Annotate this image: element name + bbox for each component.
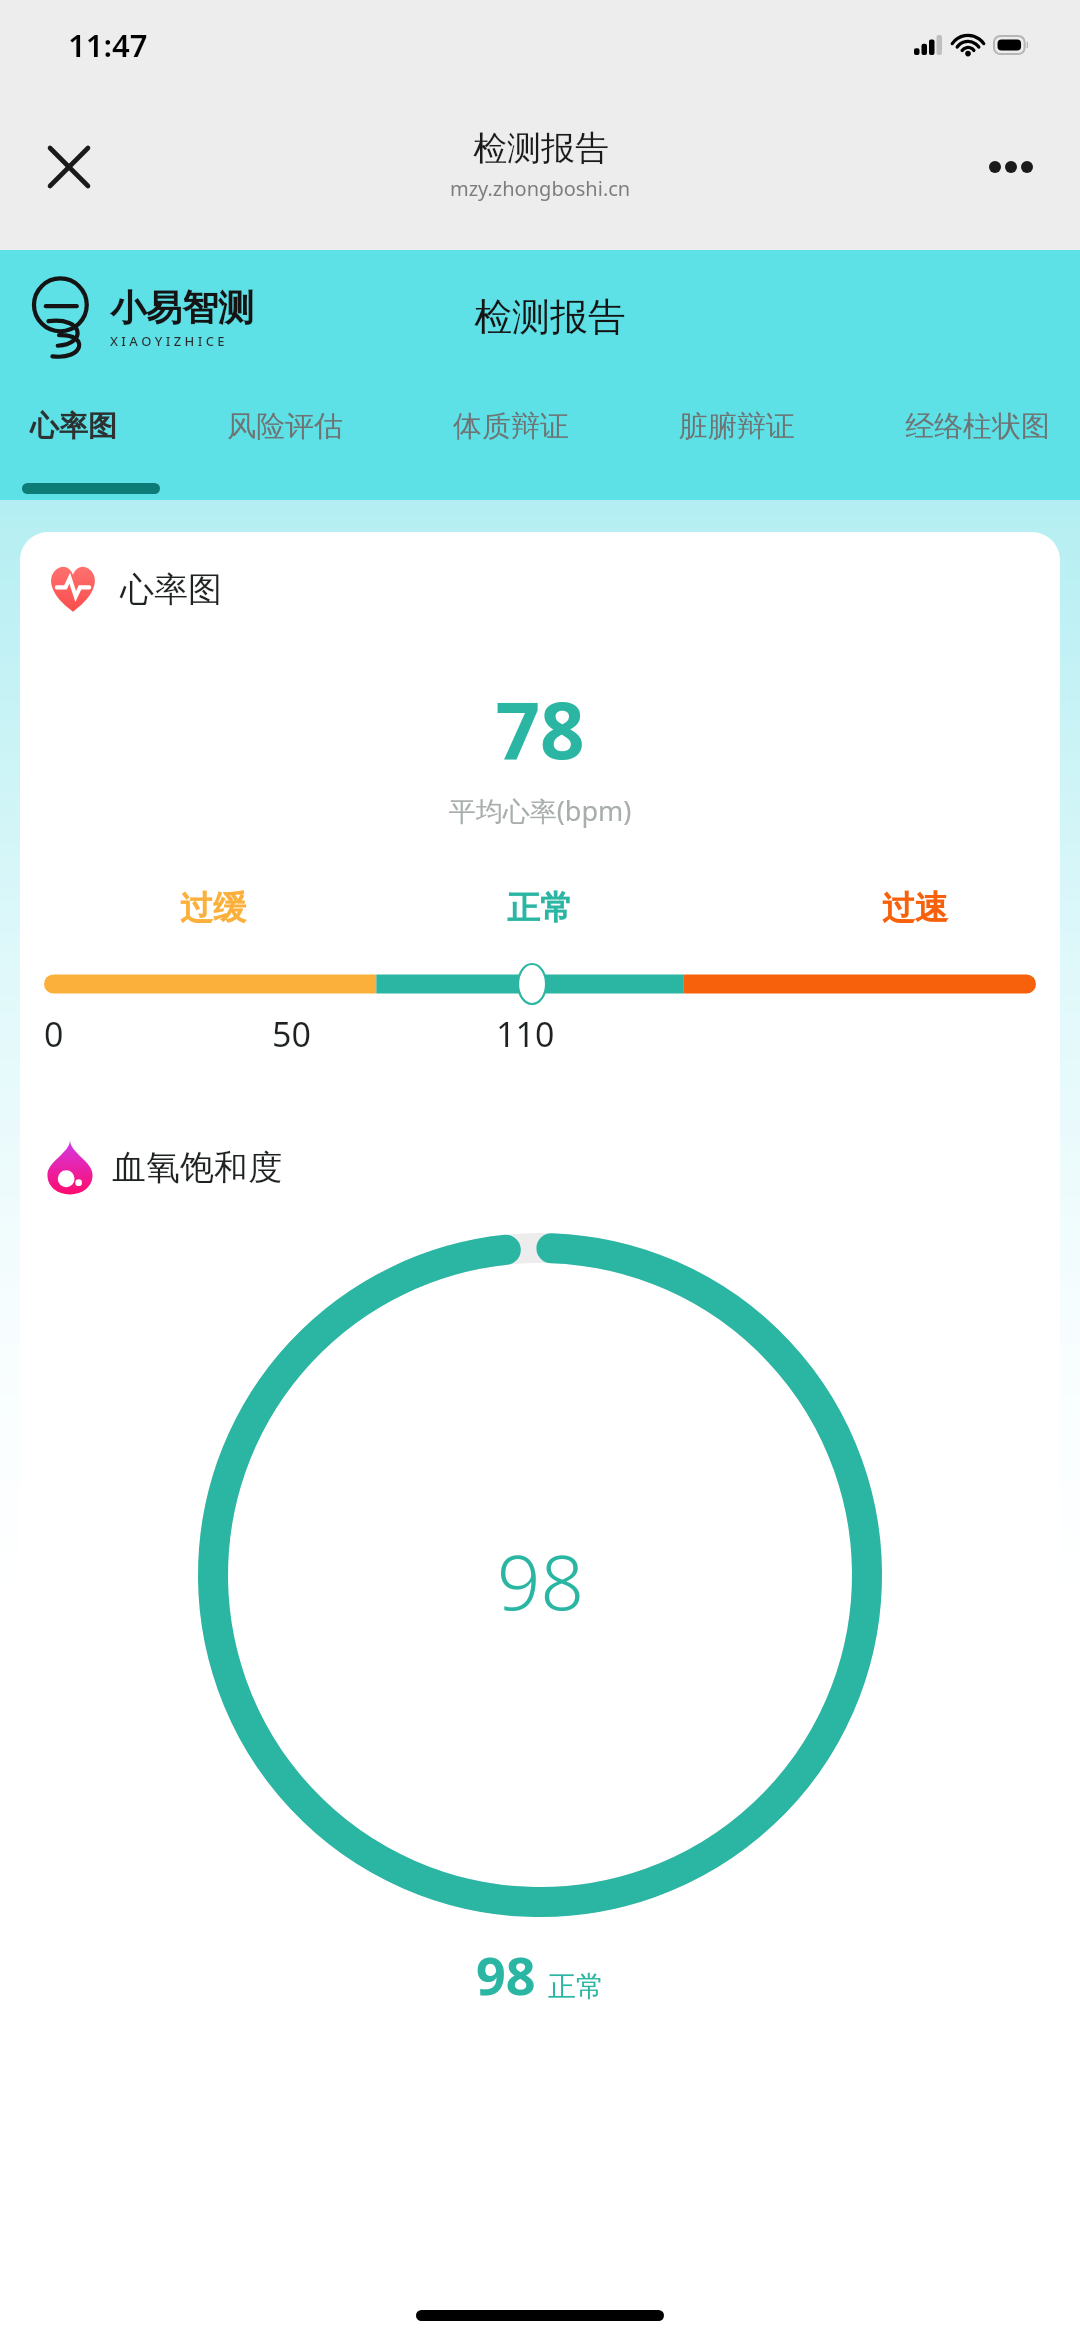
staticText: 正常 <box>507 887 573 929</box>
staticText: 98 <box>476 1939 536 2010</box>
staticText: 11:47 <box>68 24 148 66</box>
staticText: 体质辩证 <box>453 408 569 445</box>
staticText: 110 <box>496 1011 555 1057</box>
button[interactable]: Close <box>32 130 106 204</box>
staticText: 风险评估 <box>227 408 343 445</box>
staticText: 正常 <box>548 1969 604 2004</box>
staticText: 血氧饱和度 <box>112 1146 282 1189</box>
staticText: 98 <box>497 1529 584 1633</box>
staticText: 脏腑辩证 <box>679 408 795 445</box>
staticText: 小易智测 <box>110 285 254 330</box>
button[interactable]: More options <box>972 128 1050 206</box>
staticText: 0 <box>44 1011 64 1057</box>
button[interactable]: 脏腑辩证 <box>663 402 811 451</box>
staticText: 平均心率(bpm) <box>20 792 1060 829</box>
staticText: 检测报告 <box>474 293 626 341</box>
button[interactable]: 心率图 <box>14 402 133 451</box>
staticText: 过速 <box>882 887 948 929</box>
staticText: 心率图 <box>30 408 117 445</box>
staticText: X I A O Y I Z H I C E <box>110 332 225 350</box>
staticText: 检测报告 <box>473 127 609 170</box>
button[interactable]: 体质辩证 <box>437 402 585 451</box>
staticText: 心率图 <box>120 568 222 611</box>
button[interactable]: 风险评估 <box>211 402 359 451</box>
button[interactable]: 经络柱状图 <box>889 402 1066 451</box>
staticText: 过缓 <box>180 887 246 929</box>
staticText: 78 <box>20 676 1060 782</box>
staticText: 经络柱状图 <box>905 408 1050 445</box>
staticText: 50 <box>272 1011 311 1057</box>
staticText: mzy.zhongboshi.cn <box>450 175 631 202</box>
